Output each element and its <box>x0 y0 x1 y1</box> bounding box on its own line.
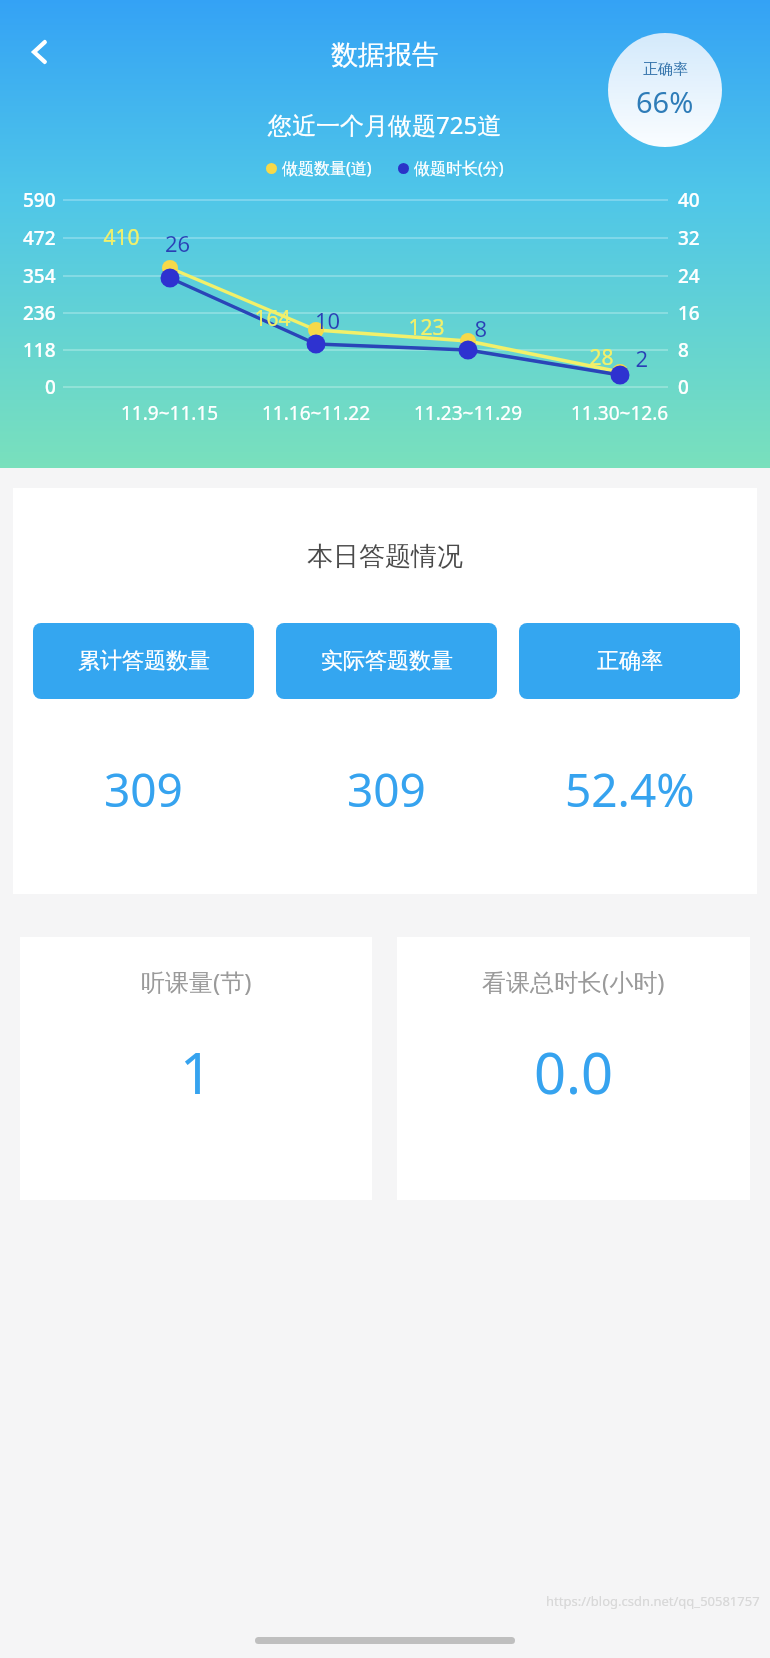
button[interactable]: Back <box>14 26 66 78</box>
staticText: 看课总时长(小时) <box>482 965 665 998</box>
staticText: 52.4% <box>565 758 695 821</box>
staticText: https://blog.csdn.net/qq_50581757 <box>546 1592 760 1610</box>
button[interactable]: 实际答题数量 <box>276 623 497 699</box>
staticText: 本日答题情况 <box>307 540 463 573</box>
button[interactable]: 看课总时长(小时) <box>397 937 750 1200</box>
staticText: 0.0 <box>534 1034 614 1110</box>
staticText: 听课量(节) <box>141 965 252 998</box>
staticText: 309 <box>347 758 426 821</box>
staticText: 66% <box>636 82 694 121</box>
staticText: 正确率 <box>643 60 688 79</box>
staticText: 累计答题数量 <box>78 647 210 675</box>
staticText: 实际答题数量 <box>321 647 453 675</box>
staticText: 309 <box>104 758 183 821</box>
button[interactable]: 正确率 <box>519 623 740 699</box>
button[interactable]: 累计答题数量 <box>33 623 254 699</box>
staticText: 您近一个月做题725道 <box>268 108 502 141</box>
button[interactable]: 正确率 <box>608 33 722 147</box>
button[interactable]: 听课量(节) <box>20 937 372 1200</box>
staticText: 做题时长(分) <box>414 157 504 179</box>
staticText: 正确率 <box>597 647 663 675</box>
staticText: 1 <box>180 1034 213 1110</box>
staticText: 数据报告 <box>331 38 439 72</box>
staticText: 做题数量(道) <box>282 157 372 179</box>
